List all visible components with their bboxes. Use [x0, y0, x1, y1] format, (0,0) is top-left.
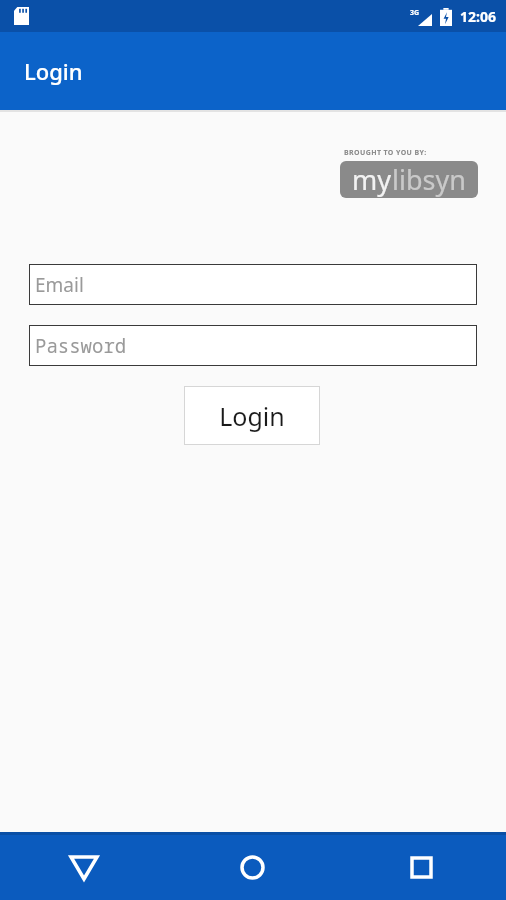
button[interactable]: Password	[29, 325, 477, 366]
button[interactable]: Login	[184, 386, 320, 445]
button[interactable]: Back	[0, 835, 168, 900]
staticText: my	[352, 161, 392, 198]
button[interactable]: Home	[168, 835, 337, 900]
staticText: 12:06	[460, 7, 496, 26]
staticText: Login	[219, 399, 285, 433]
button[interactable]: Recents	[337, 835, 506, 900]
button[interactable]: Email	[29, 264, 477, 305]
staticText: Login	[24, 56, 83, 86]
staticText: BROUGHT TO YOU BY:	[344, 148, 427, 158]
staticText: Email	[35, 272, 84, 298]
staticText: libsyn	[392, 161, 466, 198]
staticText: 3G	[410, 8, 420, 18]
staticText: Password	[35, 333, 127, 359]
